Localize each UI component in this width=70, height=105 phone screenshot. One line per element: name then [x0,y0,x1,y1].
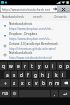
staticText: https://www.dropbox.com/s/s... [9,37,52,41]
button[interactable]: z [11,79,18,87]
button[interactable]: Emoji [11,90,18,97]
button[interactable]: d [18,71,24,78]
button[interactable]: Stop [57,5,70,13]
staticText: g [34,72,37,78]
button[interactable]: s [11,71,17,78]
staticText: h [41,72,44,78]
button[interactable]: Notebookcheck [0,21,70,31]
staticText: e [17,63,20,69]
staticText: t [31,63,33,69]
staticText: k [55,72,58,78]
button[interactable]: Shift [0,79,10,87]
button[interactable]: n [47,79,53,87]
button[interactable]: p [64,62,70,70]
button[interactable]: r [22,62,28,70]
staticText: s [13,72,16,78]
button[interactable]: Notebookcheck [0,13,70,21]
staticText: f [27,72,29,78]
button[interactable]: Go [52,6,57,12]
staticText: c [28,80,31,86]
button[interactable]: w [8,62,14,70]
staticText: . [54,91,56,97]
staticText: search [33,15,43,19]
staticText: Notebookcheck [2,15,24,19]
button[interactable]: http://www.notebookcheck.net [1,6,57,12]
staticText: http://chromium.github.io/octane/ [9,47,56,51]
staticText: m [55,80,60,86]
staticText: v [35,80,38,86]
button[interactable]: Backspace [61,79,70,87]
staticText: Notebookcheck [9,51,33,55]
button[interactable]: Dropbox - Dropbox [0,31,70,41]
button[interactable]: ?123 [0,90,10,97]
button[interactable]: f [25,71,31,78]
button[interactable]: . [51,90,58,97]
staticText: p [66,63,69,69]
button[interactable]: a [4,71,10,78]
button[interactable]: l [60,71,66,78]
staticText: u [45,63,48,69]
button[interactable]: Enter [59,90,70,97]
staticText: https://www.dropbox.com/s/sh... [9,27,54,31]
staticText: a [6,72,9,78]
staticText: ?123 [2,92,9,96]
staticText: i [52,63,54,69]
staticText: y [38,63,41,69]
staticText: r [24,63,26,69]
staticText: n [49,80,52,86]
button[interactable]: t [29,62,35,70]
staticText: q [2,63,5,69]
button[interactable]: b [40,79,46,87]
staticText: l [62,72,64,78]
staticText: Onwards [54,15,67,19]
button[interactable]: o [57,62,63,70]
staticText: o [59,63,62,69]
button[interactable]: u [43,62,49,70]
button[interactable]: y [36,62,42,70]
button[interactable]: i [50,62,56,70]
button[interactable]: v [33,79,39,87]
staticText: b [42,80,45,86]
button[interactable]: k [53,71,59,78]
button[interactable]: h [39,71,45,78]
button[interactable]: e [15,62,21,70]
staticText: x [21,80,24,86]
staticText: d [20,72,23,78]
staticText: http://www.notebookcheck.net [2,7,50,11]
staticText: z [13,80,16,86]
button[interactable]: Notebookcheck [0,51,70,59]
staticText: j [48,72,50,78]
staticText: Dropbox - Dropbox [9,32,38,36]
staticText: http://www.notebookcheck.net/ [9,56,53,59]
button[interactable]: m [54,79,60,87]
button[interactable]: c [26,79,32,87]
button[interactable]: q [0,62,7,70]
staticText: Octane 2.0 JavaScript Benchmark [9,42,58,46]
staticText: Notebookcheck [9,22,33,26]
button[interactable]: g [32,71,38,78]
button[interactable]: j [46,71,52,78]
staticText: w [9,63,13,69]
button[interactable]: x [19,79,25,87]
button[interactable]: Octane 2.0 JavaScript Benchmark [0,41,70,51]
